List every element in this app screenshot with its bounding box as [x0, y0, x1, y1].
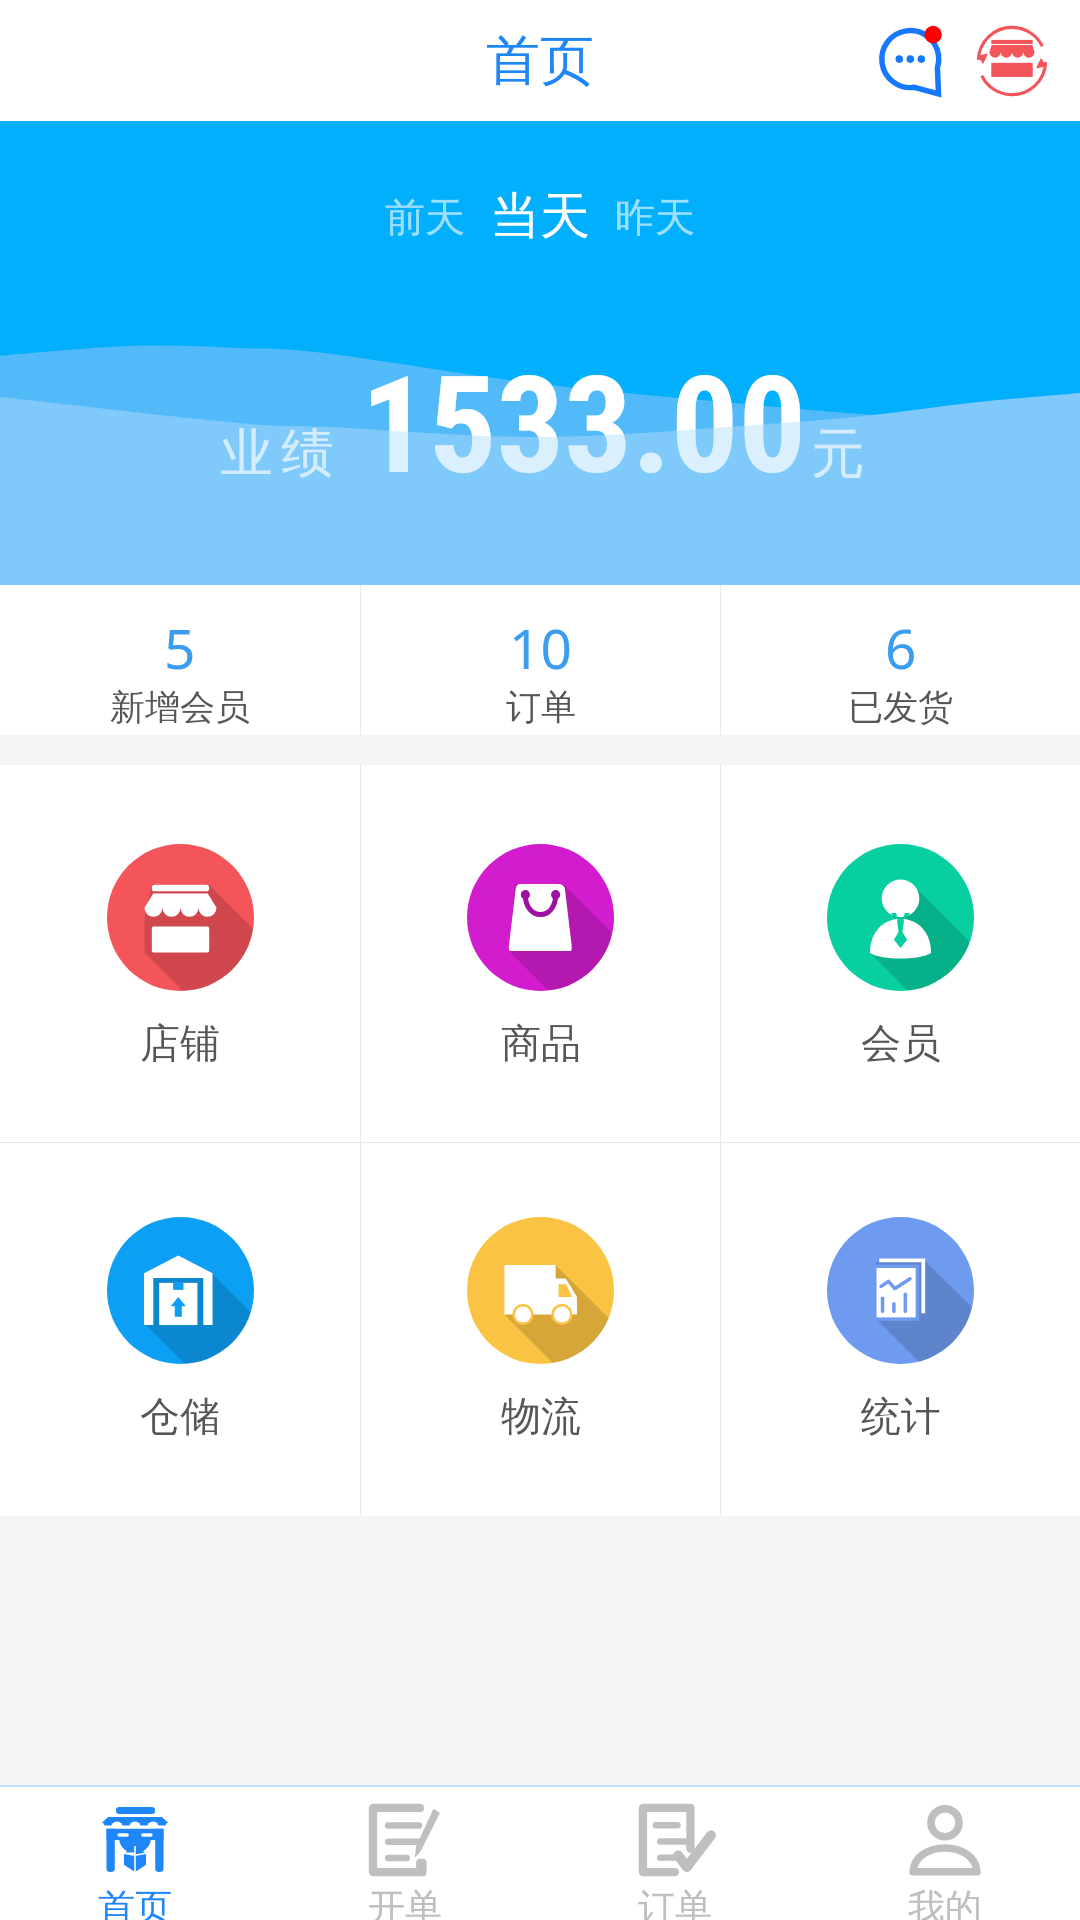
button[interactable]: 店铺: [0, 765, 360, 1142]
staticText: 业绩: [216, 421, 338, 487]
staticText: 商品: [501, 1018, 581, 1068]
button[interactable]: 仓储: [0, 1143, 360, 1516]
staticText: 仓储: [140, 1391, 220, 1441]
staticText: 店铺: [140, 1018, 220, 1068]
staticText: 统计: [861, 1391, 941, 1441]
staticText: 会员: [861, 1018, 941, 1068]
staticText: 5: [164, 610, 196, 685]
staticText: 订单: [506, 685, 576, 729]
button[interactable]: 商品: [361, 765, 720, 1142]
button[interactable]: 统计: [721, 1143, 1080, 1516]
staticText: 首页: [486, 27, 594, 95]
staticText: 元: [811, 420, 865, 488]
button[interactable]: 物流: [361, 1143, 720, 1516]
staticText: 6: [885, 610, 917, 685]
button[interactable]: 10: [361, 585, 720, 735]
button[interactable]: 开单: [270, 1787, 540, 1920]
button[interactable]: Shop: [964, 13, 1060, 109]
button[interactable]: 5: [0, 585, 360, 735]
staticText: 我的: [908, 1884, 982, 1920]
button[interactable]: 首页: [0, 1787, 270, 1920]
button[interactable]: 我的: [810, 1787, 1080, 1920]
staticText: 1533.00: [361, 348, 807, 505]
staticText: 开单: [368, 1884, 442, 1920]
button[interactable]: 昨天: [615, 192, 695, 248]
button[interactable]: 6: [721, 585, 1080, 735]
button[interactable]: 会员: [721, 765, 1080, 1142]
button[interactable]: Messages: [868, 13, 964, 109]
staticText: 订单: [638, 1884, 712, 1920]
button[interactable]: 前天: [385, 192, 465, 248]
staticText: 新增会员: [110, 685, 250, 729]
button[interactable]: 订单: [540, 1787, 810, 1920]
staticText: 已发货: [848, 685, 953, 729]
staticText: 10: [509, 610, 572, 685]
staticText: 物流: [501, 1391, 581, 1441]
staticText: 首页: [98, 1884, 172, 1920]
button[interactable]: 当天: [490, 185, 590, 248]
